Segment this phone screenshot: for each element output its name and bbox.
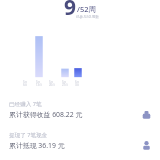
staticText: 6月 3日 bbox=[75, 80, 80, 87]
staticText: 已参与/总周数 bbox=[76, 14, 99, 19]
staticText: 5月 27日 bbox=[62, 80, 68, 87]
button[interactable]: 提现了 7笔现金 bbox=[0, 130, 160, 151]
staticText: /52周 bbox=[77, 4, 96, 14]
staticText: 已经赚入 7笔 bbox=[9, 100, 42, 108]
staticText: 累计抵现 36.19 元 bbox=[9, 141, 65, 150]
other: 收益 bbox=[142, 110, 151, 119]
button[interactable]: 已经赚入 7笔 bbox=[0, 99, 160, 120]
other: 抵现 bbox=[142, 141, 151, 150]
staticText: 9 bbox=[64, 0, 77, 17]
staticText: 提现了 7笔现金 bbox=[9, 131, 48, 139]
staticText: 5月 20日 bbox=[49, 80, 55, 87]
staticText: 5月 13日 bbox=[36, 80, 42, 87]
staticText: 5月 6日 bbox=[23, 80, 28, 87]
staticText: 累计获得收益 608.22 元 bbox=[9, 110, 83, 119]
